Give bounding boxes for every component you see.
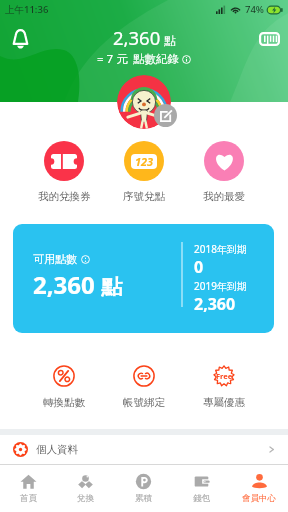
button[interactable]: 我的兌換券 [24,134,104,203]
staticText: 帳號綁定 [123,396,165,409]
button[interactable]: 錢包 [172,465,230,512]
button[interactable]: Edit profile [154,104,177,127]
staticText: 序號兌點 [123,190,165,203]
button[interactable]: 123 [104,134,184,203]
staticText: = 7 元 [97,51,128,67]
button[interactable]: Free [184,365,264,409]
staticText: 2,360 [113,25,161,50]
button[interactable]: Barcode [254,24,284,53]
button[interactable]: 首頁 [0,465,57,512]
button[interactable]: Notifications [5,24,35,53]
staticText: 上午11:36 [5,3,49,16]
button[interactable]: 轉換點數 [24,365,104,409]
staticText: 點 [164,33,176,48]
staticText: 轉換點數 [43,396,85,409]
button[interactable]: 累積 [114,465,172,512]
staticText: 專屬優惠 [203,396,245,409]
staticText: 點 [101,274,122,300]
staticText: 2019年到期 [194,279,247,293]
staticText: 2018年到期 [194,242,247,256]
button[interactable]: 個人資料 [0,435,288,464]
staticText: 74% [245,3,264,16]
button[interactable]: 我的最愛 [184,134,264,203]
staticText: 錢包 [193,493,210,504]
staticText: 2,360 [33,268,95,301]
staticText: 個人資料 [36,443,78,456]
staticText: 點數紀錄 [133,52,179,66]
staticText: 可用點數 [33,252,77,266]
staticText: Free [216,371,233,381]
staticText: 0 [194,256,204,278]
button[interactable]: Profile avatar [117,75,171,129]
staticText: 兌換 [77,493,94,504]
staticText: 首頁 [20,493,37,504]
button[interactable]: 帳號綁定 [104,365,184,409]
staticText: 累積 [135,493,152,504]
staticText: 會員中心 [242,493,276,504]
button[interactable]: 可用點數 [13,224,274,333]
staticText: 我的最愛 [203,190,245,203]
button[interactable]: 會員中心 [230,465,288,512]
button[interactable]: 兌換 [57,465,114,512]
staticText: 我的兌換券 [38,190,91,203]
staticText: 2,360 [194,293,236,315]
staticText: 123 [135,154,154,169]
